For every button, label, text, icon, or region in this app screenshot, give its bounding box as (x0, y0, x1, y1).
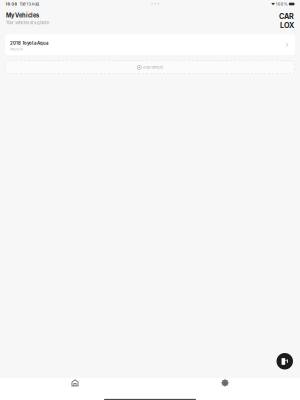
staticText: CAR (279, 12, 294, 21)
staticText: ANC1234 (10, 47, 23, 51)
button[interactable]: 2018 Toyota Aqua (5, 34, 295, 55)
staticText: Add Vehicle (143, 65, 163, 70)
button[interactable]: Log fuel (276, 353, 293, 369)
staticText: Tue 13 Aug (17, 2, 38, 6)
button[interactable]: Settings (150, 375, 300, 391)
staticText: My Vehicles (6, 12, 39, 19)
button[interactable]: Add Vehicle (5, 60, 295, 74)
button[interactable]: Home (0, 375, 150, 391)
staticText: Your vehicles at a glance (6, 20, 49, 25)
staticText: • • • (151, 2, 159, 6)
staticText: LOX (280, 21, 294, 30)
staticText: 16:38 (5, 2, 17, 6)
staticText: 100% (276, 2, 288, 6)
staticText: 2018 Toyota Aqua (10, 41, 48, 46)
